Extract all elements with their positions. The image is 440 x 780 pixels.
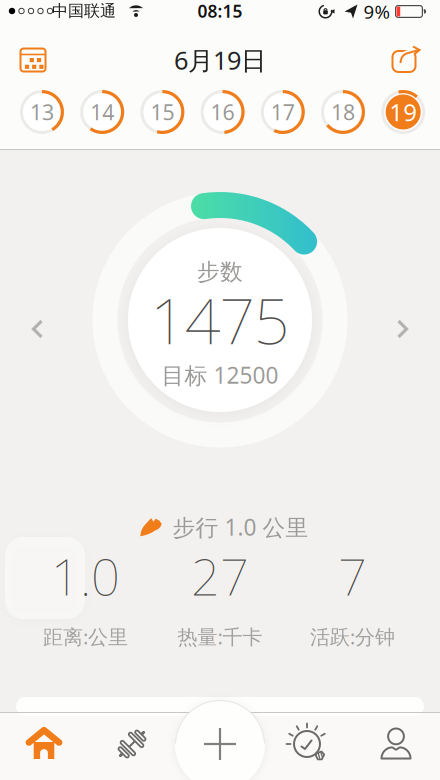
- staticText: 13: [30, 98, 54, 126]
- button[interactable]: 18: [321, 90, 365, 134]
- button[interactable]: Add: [190, 717, 250, 771]
- staticText: 步行 1.0 公里: [172, 512, 308, 542]
- staticText: 6月19日: [174, 43, 266, 77]
- button[interactable]: AssistiveTouch: [5, 537, 85, 619]
- staticText: 活跃:分钟: [310, 623, 395, 650]
- button[interactable]: Home: [14, 717, 74, 771]
- button[interactable]: 14: [80, 90, 124, 134]
- staticText: 中国联通: [52, 1, 116, 21]
- staticText: 距离:公里: [43, 623, 128, 650]
- staticText: 16: [211, 98, 235, 126]
- staticText: 7: [338, 542, 367, 609]
- staticText: 14: [90, 98, 114, 126]
- staticText: 步数: [197, 258, 243, 286]
- button[interactable]: Previous day: [22, 309, 52, 349]
- staticText: 15: [150, 98, 174, 126]
- staticText: 热量:千卡: [177, 623, 262, 650]
- staticText: 1.0: [51, 542, 120, 609]
- button[interactable]: Profile: [366, 717, 426, 771]
- staticText: 17: [271, 98, 295, 126]
- staticText: 27: [191, 542, 249, 609]
- button[interactable]: 15: [140, 90, 184, 134]
- staticText: 18: [331, 98, 355, 126]
- staticText: 9%: [363, 0, 390, 24]
- button[interactable]: Next day: [387, 309, 417, 349]
- button[interactable]: Discover: [278, 717, 338, 771]
- button[interactable]: Share: [391, 46, 420, 74]
- button[interactable]: 19: [381, 90, 425, 134]
- button[interactable]: 16: [201, 90, 245, 134]
- button[interactable]: 13: [20, 90, 64, 134]
- staticText: 目标 12500: [161, 360, 278, 390]
- button[interactable]: Workouts: [102, 717, 162, 771]
- button[interactable]: Calendar: [19, 47, 46, 72]
- staticText: 08:15: [197, 0, 242, 22]
- staticText: 1475: [150, 278, 290, 362]
- staticText: 19: [389, 96, 417, 128]
- button[interactable]: 17: [261, 90, 305, 134]
